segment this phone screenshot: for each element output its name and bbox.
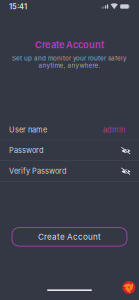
button[interactable]: Create Account [12, 228, 127, 246]
staticText: anytime, anywhere. [38, 62, 100, 69]
staticText: Set up and monitor your router safely [12, 54, 127, 62]
staticText: Verify Password [9, 166, 67, 175]
staticText: Password [9, 146, 44, 155]
staticText: admin [103, 125, 125, 134]
staticText: 15:41 [9, 2, 27, 11]
button[interactable]: Show password [121, 146, 131, 154]
staticText: Create Account [38, 232, 101, 242]
staticText: User name [9, 125, 47, 134]
staticText: Create Account [35, 39, 104, 50]
button[interactable]: Show verify password [121, 167, 131, 175]
